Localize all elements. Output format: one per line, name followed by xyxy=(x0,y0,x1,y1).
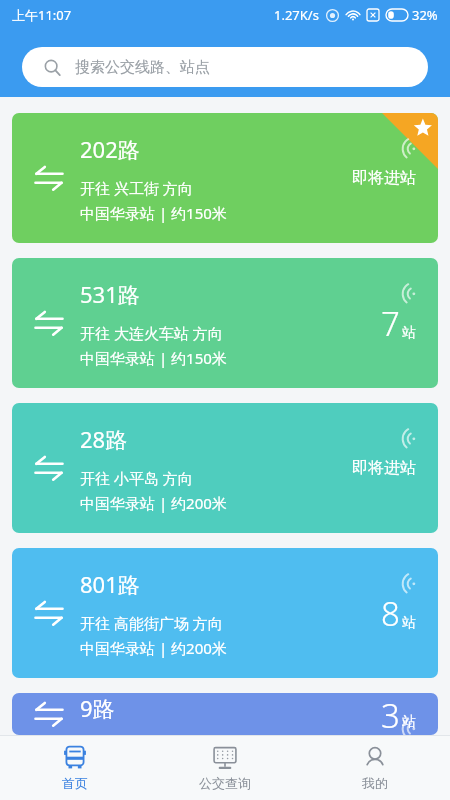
button[interactable]: 9路 xyxy=(12,693,438,735)
button[interactable]: 搜索公交线路、站点 xyxy=(22,47,428,87)
staticText: 531路 xyxy=(80,279,140,309)
staticText: 中国华录站 | 约200米 xyxy=(80,638,227,658)
button[interactable]: 801路 xyxy=(12,548,438,678)
staticText: 7 xyxy=(381,301,400,346)
button[interactable]: 首页 xyxy=(0,736,150,800)
staticText: 中国华录站 | 约150米 xyxy=(80,348,227,368)
staticText: 8 xyxy=(381,591,400,636)
staticText: 即将进站 xyxy=(352,168,416,188)
button[interactable]: 202路 xyxy=(12,113,438,243)
button[interactable]: 我的 xyxy=(300,736,450,800)
staticText: 首页 xyxy=(62,775,88,791)
staticText: 站 xyxy=(402,713,416,731)
staticText: 开往 大连火车站 方向 xyxy=(80,323,223,343)
staticText: 站 xyxy=(402,324,416,342)
staticText: 开往 高能街广场 方向 xyxy=(80,613,223,633)
staticText: 上午11:07 xyxy=(12,6,72,24)
staticText: 开往 兴工街 方向 xyxy=(80,178,193,198)
staticText: 1.27K/s xyxy=(274,6,319,24)
staticText: 即将进站 xyxy=(352,458,416,478)
staticText: 站 xyxy=(402,614,416,632)
staticText: 28路 xyxy=(80,424,128,454)
staticText: 中国华录站 | 约200米 xyxy=(80,493,227,513)
staticText: 32% xyxy=(412,6,438,24)
staticText: 801路 xyxy=(80,569,140,599)
staticText: 我的 xyxy=(362,775,388,791)
staticText: 9路 xyxy=(80,693,115,723)
staticText: 202路 xyxy=(80,134,140,164)
button[interactable]: 28路 xyxy=(12,403,438,533)
button[interactable]: 公交查询 xyxy=(150,736,300,800)
staticText: 中国华录站 | 约150米 xyxy=(80,203,227,223)
button[interactable]: 531路 xyxy=(12,258,438,388)
staticText: 开往 小平岛 方向 xyxy=(80,468,193,488)
staticText: 搜索公交线路、站点 xyxy=(75,58,210,77)
staticText: 3 xyxy=(381,693,400,735)
staticText: 公交查询 xyxy=(199,775,251,791)
